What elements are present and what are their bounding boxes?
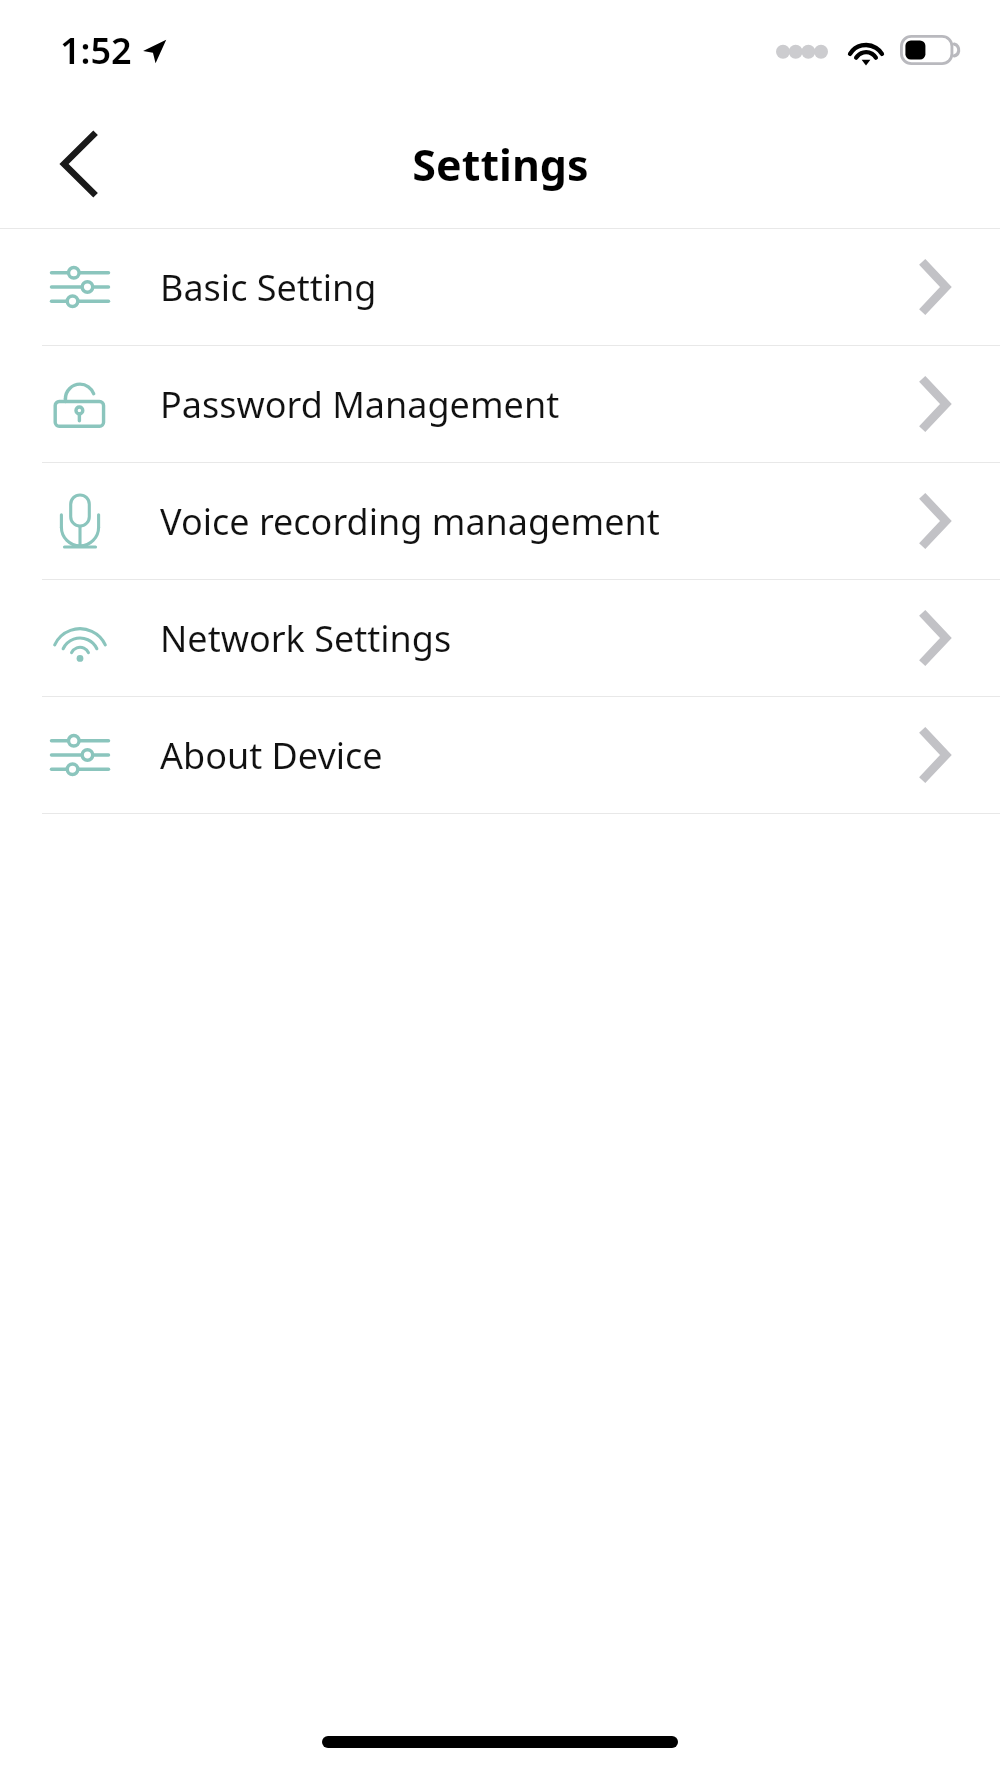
staticText: Password Management: [160, 380, 870, 429]
staticText: Settings: [412, 135, 589, 194]
button[interactable]: Basic Setting: [0, 229, 1000, 345]
staticText: Network Settings: [160, 614, 870, 663]
staticText: About Device: [160, 731, 870, 780]
button[interactable]: Voice recording management: [0, 463, 1000, 579]
staticText: Voice recording management: [160, 497, 870, 546]
button[interactable]: About Device: [0, 697, 1000, 813]
button[interactable]: Password Management: [0, 346, 1000, 462]
staticText: 1:52: [60, 26, 132, 75]
staticText: Basic Setting: [160, 263, 870, 312]
button[interactable]: Back: [40, 125, 118, 203]
button[interactable]: Network Settings: [0, 580, 1000, 696]
